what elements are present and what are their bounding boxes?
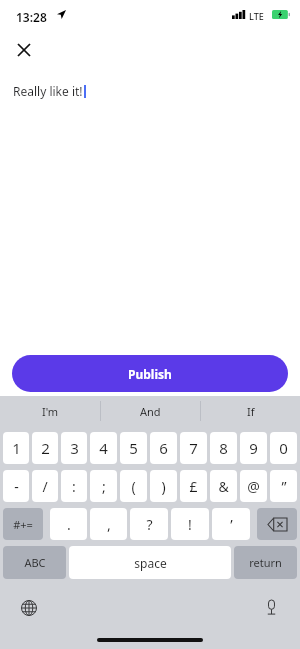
button[interactable]: Dictate	[256, 593, 286, 623]
button[interactable]: 4	[90, 432, 117, 464]
staticText: 5	[129, 438, 138, 458]
staticText: And	[140, 404, 161, 419]
button[interactable]: 2	[32, 432, 58, 464]
staticText: 8	[219, 438, 228, 458]
staticText: )	[161, 477, 166, 496]
button[interactable]: 9	[240, 432, 267, 464]
button[interactable]: 1	[3, 432, 29, 464]
button[interactable]: 8	[210, 432, 237, 464]
staticText: 13:28	[16, 9, 47, 25]
button[interactable]: :	[61, 470, 87, 502]
staticText: 7	[189, 438, 198, 458]
staticText: 2	[41, 438, 50, 458]
button[interactable]: @	[240, 470, 267, 502]
staticText: 0	[279, 438, 288, 458]
staticText: 6	[159, 438, 168, 458]
staticText: .	[67, 515, 71, 534]
button[interactable]: ”	[270, 470, 297, 502]
button[interactable]: If	[201, 396, 300, 426]
button[interactable]: &	[210, 470, 237, 502]
staticText: 1	[12, 438, 21, 458]
button[interactable]: ?	[130, 508, 168, 540]
button[interactable]: space	[69, 546, 231, 579]
button[interactable]: Publish	[12, 355, 288, 392]
button[interactable]: 7	[180, 432, 207, 464]
staticText: 9	[249, 438, 258, 458]
button[interactable]: (	[120, 470, 147, 502]
staticText: ”	[281, 477, 287, 496]
button[interactable]: 6	[150, 432, 177, 464]
staticText: :	[72, 477, 76, 496]
staticText: ,	[107, 515, 111, 534]
button[interactable]: #+=	[3, 508, 43, 540]
staticText: 3	[70, 438, 79, 458]
staticText: return	[249, 555, 282, 570]
button[interactable]: I'm	[0, 396, 100, 426]
staticText: ’	[230, 515, 233, 534]
staticText: ABC	[24, 555, 46, 570]
button[interactable]: ’	[212, 508, 250, 540]
button[interactable]: .	[50, 508, 87, 540]
button[interactable]: /	[32, 470, 58, 502]
button[interactable]: !	[171, 508, 209, 540]
staticText: ;	[102, 477, 106, 496]
staticText: #+=	[13, 517, 33, 532]
staticText: Really like it!	[13, 83, 83, 99]
button[interactable]: 0	[270, 432, 297, 464]
staticText: £	[189, 477, 198, 496]
staticText: /	[42, 477, 48, 496]
staticText: If	[247, 404, 255, 419]
staticText: space	[134, 555, 167, 571]
button[interactable]: )	[150, 470, 177, 502]
staticText: &	[218, 477, 229, 496]
staticText: @	[247, 477, 260, 496]
button[interactable]: £	[180, 470, 207, 502]
staticText: 4	[99, 438, 108, 458]
button[interactable]: -	[3, 470, 29, 502]
button[interactable]: ABC	[3, 546, 66, 579]
button[interactable]: Close	[4, 30, 44, 70]
button[interactable]: return	[234, 546, 297, 579]
staticText: Publish	[128, 366, 172, 382]
button[interactable]: ,	[90, 508, 127, 540]
button[interactable]: Change keyboard	[14, 593, 44, 623]
button[interactable]: And	[101, 396, 200, 426]
button[interactable]: Backspace	[257, 508, 297, 540]
staticText: !	[188, 515, 192, 534]
staticText: -	[14, 477, 19, 496]
button[interactable]: ;	[90, 470, 117, 502]
staticText: (	[131, 477, 136, 496]
staticText: ?	[146, 515, 153, 534]
button[interactable]: 3	[61, 432, 87, 464]
staticText: LTE	[249, 10, 264, 22]
button[interactable]: 5	[120, 432, 147, 464]
staticText: I'm	[42, 404, 59, 419]
